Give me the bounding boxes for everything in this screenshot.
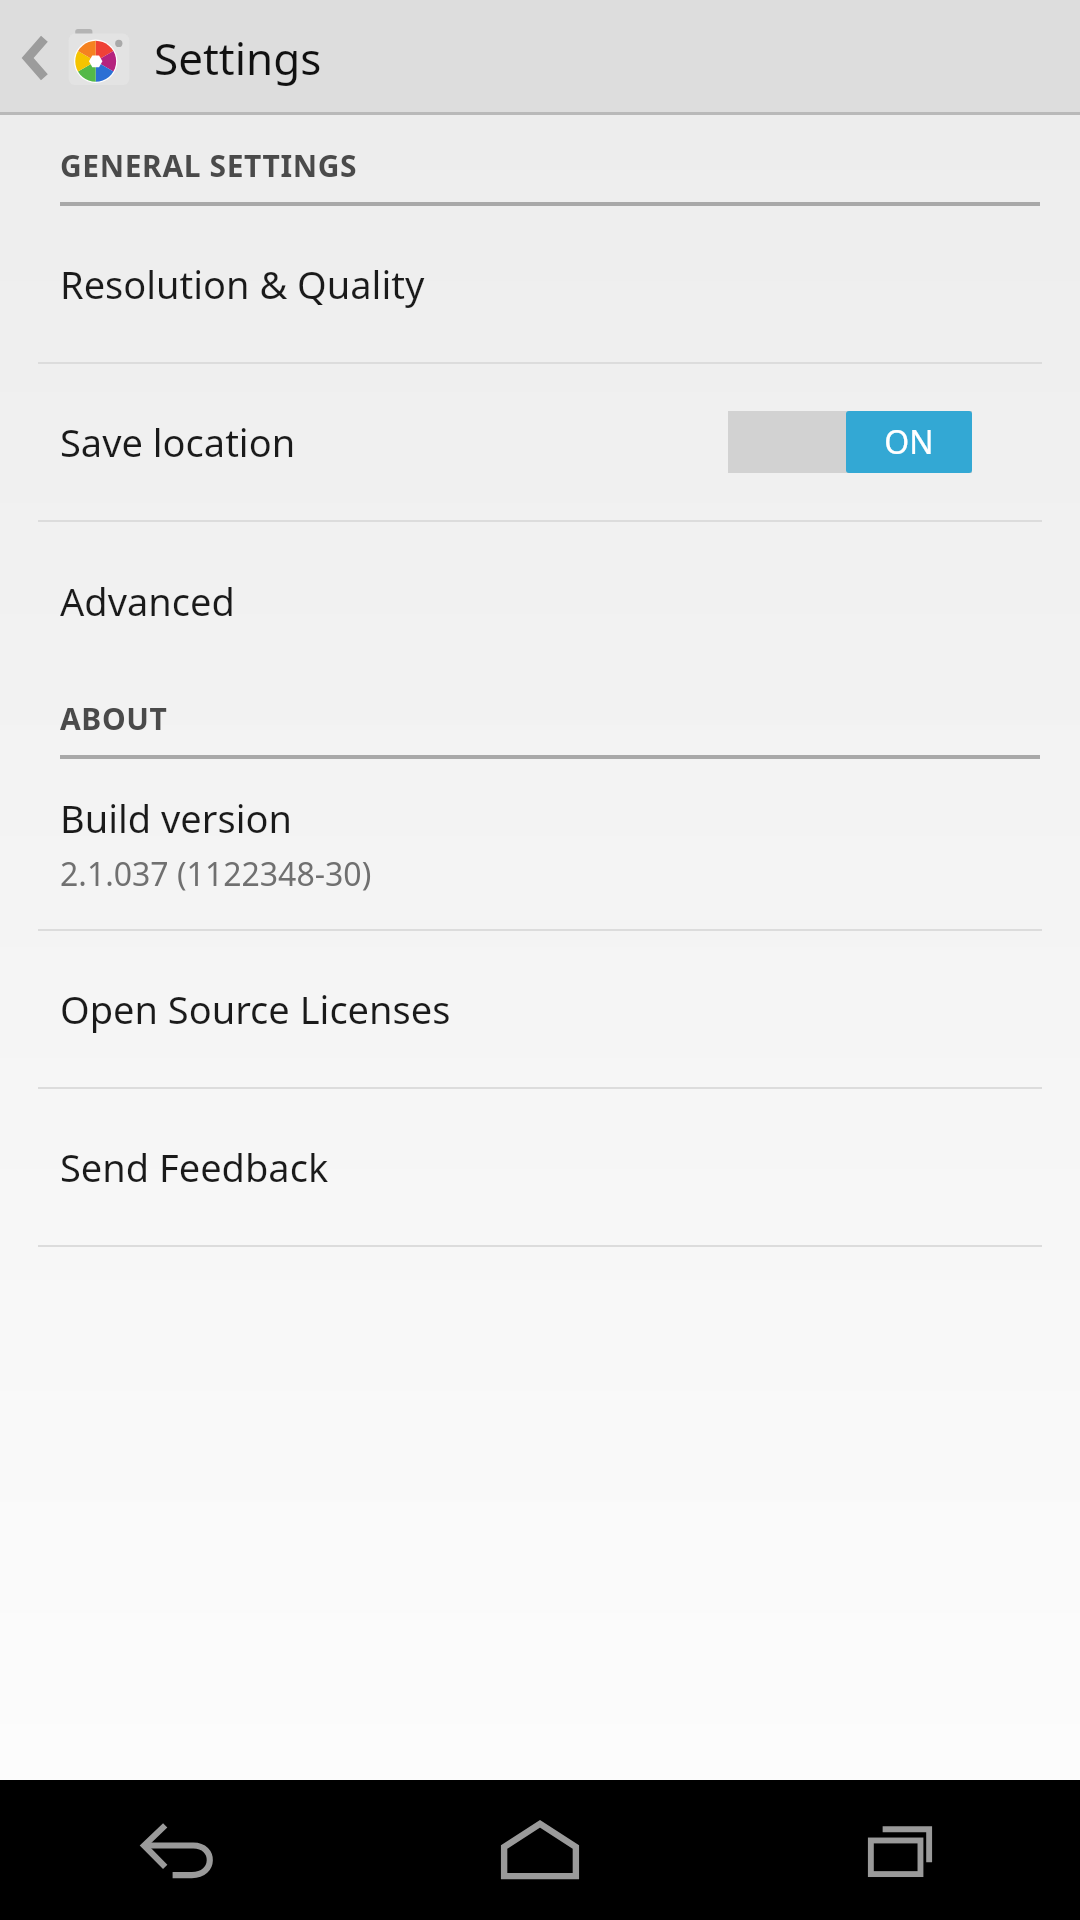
button[interactable]: Back bbox=[0, 1780, 360, 1920]
button[interactable]: Home bbox=[360, 1780, 720, 1920]
button[interactable]: Back bbox=[8, 8, 64, 108]
staticText: ABOUT bbox=[60, 698, 168, 739]
button[interactable]: Save location toggle, on bbox=[728, 411, 972, 473]
staticText: Open Source Licenses bbox=[60, 983, 451, 1035]
staticText: Resolution & Quality bbox=[60, 258, 425, 310]
button[interactable]: Send Feedback bbox=[0, 1089, 1080, 1247]
staticText: Save location bbox=[60, 416, 296, 468]
staticText: Settings bbox=[154, 28, 322, 88]
button[interactable]: Build version bbox=[0, 759, 1080, 931]
staticText: GENERAL SETTINGS bbox=[60, 145, 358, 186]
button[interactable]: Open Source Licenses bbox=[0, 931, 1080, 1089]
button[interactable]: Recent apps bbox=[720, 1780, 1080, 1920]
staticText: ON bbox=[884, 420, 934, 464]
button[interactable]: Resolution & Quality bbox=[0, 206, 1080, 364]
staticText: 2.1.037 (1122348-30) bbox=[60, 852, 372, 896]
button[interactable]: Advanced bbox=[0, 522, 1080, 680]
staticText: Advanced bbox=[60, 575, 235, 627]
button[interactable]: Save location bbox=[0, 364, 1080, 522]
staticText: Send Feedback bbox=[60, 1141, 329, 1193]
staticText: Build version bbox=[60, 792, 292, 844]
